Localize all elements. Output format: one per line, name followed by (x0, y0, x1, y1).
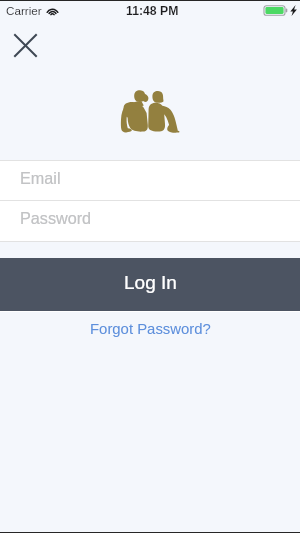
button[interactable]: Close (0, 20, 51, 70)
button[interactable]: Password (0, 201, 300, 241)
staticText: Password (20, 209, 92, 227)
staticText: Forgot Password? (90, 321, 211, 338)
staticText: Log In (124, 272, 177, 293)
button[interactable]: Email (0, 161, 300, 200)
staticText: Carrier (6, 4, 42, 17)
staticText: Email (20, 169, 61, 187)
staticText: 11:48 PM (126, 4, 179, 18)
button[interactable]: Forgot Password? (84, 317, 217, 342)
button[interactable]: Log In (0, 258, 300, 311)
